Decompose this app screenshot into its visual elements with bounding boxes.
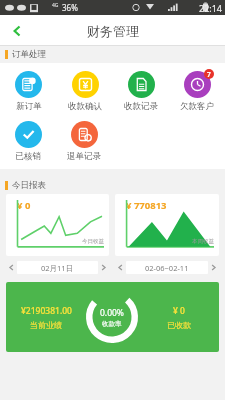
button[interactable]: 新订单 (0, 69, 57, 114)
staticText: 22:14 (199, 2, 223, 14)
button[interactable]: 02-06~02-11 (126, 261, 208, 274)
button[interactable]: Back (0, 15, 34, 46)
staticText: 订单处理 (12, 49, 46, 60)
staticText: 0.00% (100, 307, 124, 319)
button[interactable]: 收款确认 (57, 69, 113, 114)
staticText: 已核销 (15, 151, 41, 162)
staticText: 欠款客户 (180, 101, 214, 112)
staticText: 已收款 (167, 320, 191, 330)
button[interactable]: ¥2190381.00 (6, 282, 219, 352)
staticText: ¥ 0 (173, 305, 185, 317)
staticText: 收款记录 (124, 101, 158, 112)
button[interactable]: Previous (115, 262, 126, 273)
staticText: 7 (207, 70, 211, 79)
staticText: 本周收益 (192, 238, 214, 245)
button[interactable]: 7 (169, 69, 225, 114)
staticText: 02-06~02-11 (145, 263, 189, 273)
staticText: 02月11日 (41, 263, 74, 273)
staticText: 4G (52, 2, 59, 9)
button[interactable]: Previous (6, 262, 17, 273)
staticText: 新订单 (16, 101, 42, 112)
staticText: ¥2190381.00 (21, 305, 72, 317)
staticText: 收款率 (102, 320, 122, 328)
staticText: 今日报表 (12, 180, 46, 191)
button[interactable]: ¥ 0 (6, 194, 109, 256)
button[interactable]: Next (208, 262, 219, 273)
button[interactable]: ¥ 770813 (115, 194, 219, 256)
button[interactable]: 收款记录 (113, 69, 169, 114)
staticText: 收款确认 (68, 101, 102, 112)
staticText: 当前业绩 (30, 320, 62, 330)
staticText: 36% (62, 2, 78, 13)
staticText: ¥ 770813 (126, 199, 167, 212)
staticText: 财务管理 (87, 23, 139, 39)
button[interactable]: 退单记录 (56, 119, 112, 164)
button[interactable]: 已核销 (0, 119, 56, 164)
staticText: ¥ 0 (17, 199, 31, 212)
staticText: 今日收益 (82, 238, 104, 245)
button[interactable]: 02月11日 (17, 261, 98, 274)
button[interactable]: Next (98, 262, 109, 273)
staticText: 退单记录 (67, 151, 101, 162)
